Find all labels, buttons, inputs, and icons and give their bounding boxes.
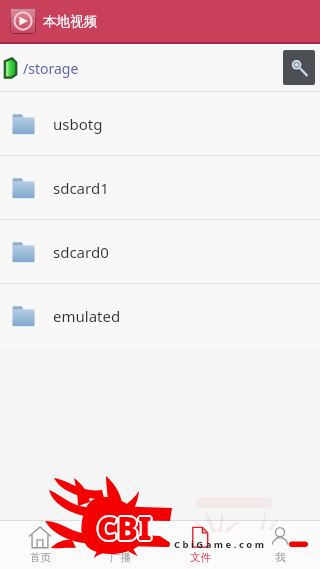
- button[interactable]: 我: [240, 521, 320, 569]
- staticText: CBI: [95, 507, 150, 549]
- staticText: CBI: [97, 506, 152, 548]
- button[interactable]: sdcard0: [0, 220, 320, 283]
- button[interactable]: 文件: [160, 521, 240, 569]
- staticText: emulated: [53, 306, 121, 326]
- staticText: usbotg: [53, 114, 103, 134]
- button[interactable]: Search: [283, 50, 315, 85]
- staticText: CBI: [97, 507, 152, 549]
- staticText: sdcard0: [53, 242, 109, 262]
- button[interactable]: emulated: [0, 284, 320, 347]
- staticText: CBI: [96, 507, 151, 549]
- button[interactable]: 首页: [0, 521, 80, 569]
- button[interactable]: /storage: [0, 44, 320, 91]
- staticText: 首页: [30, 551, 51, 564]
- staticText: CBI: [98, 507, 153, 549]
- staticText: /storage: [23, 59, 79, 78]
- staticText: 本地视频: [43, 13, 97, 30]
- staticText: CBI: [97, 509, 152, 551]
- staticText: CBI: [98, 506, 153, 548]
- button[interactable]: Local video: [10, 8, 36, 34]
- staticText: C b i G a m e . c o m: [174, 538, 264, 551]
- staticText: CBI: [99, 507, 154, 549]
- staticText: CBI: [96, 508, 151, 550]
- staticText: CBI: [98, 508, 153, 550]
- staticText: 文件: [190, 551, 211, 564]
- button[interactable]: 广播: [80, 521, 160, 569]
- staticText: sdcard1: [53, 178, 109, 198]
- staticText: CBI: [97, 508, 152, 550]
- staticText: 广播: [110, 551, 131, 564]
- button[interactable]: usbotg: [0, 92, 320, 155]
- staticText: 我: [275, 551, 286, 564]
- staticText: CBI: [97, 505, 152, 547]
- staticText: CBI: [97, 507, 152, 549]
- staticText: CBI: [96, 506, 151, 548]
- button[interactable]: sdcard1: [0, 156, 320, 219]
